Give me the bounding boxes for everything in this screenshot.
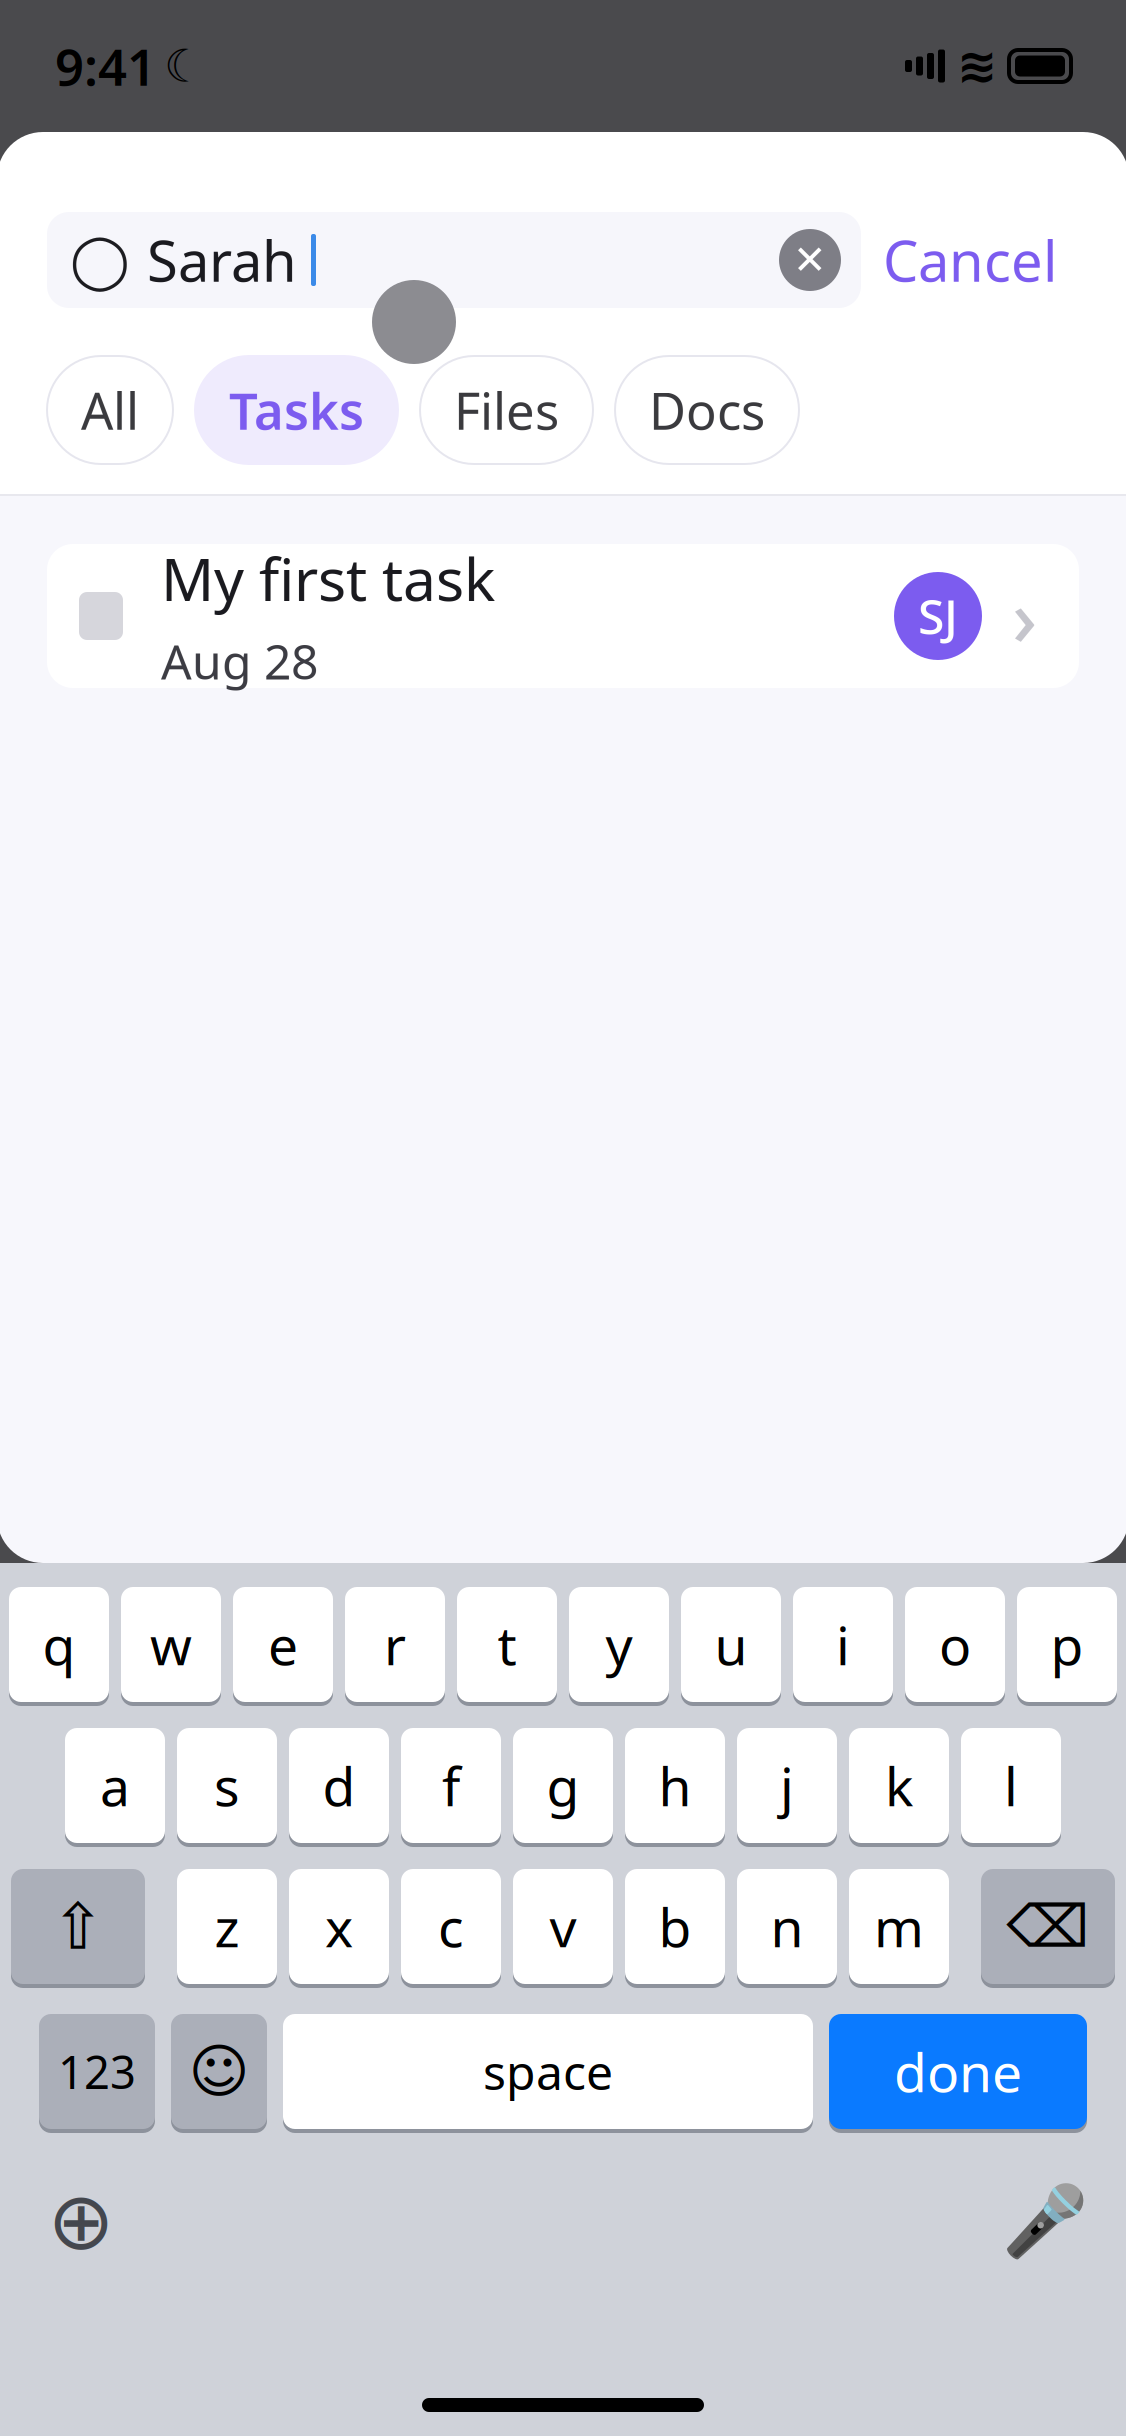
button[interactable]: x xyxy=(289,1867,389,1986)
staticText: a xyxy=(100,1750,130,1821)
staticText: u xyxy=(714,1609,747,1680)
staticText: c xyxy=(438,1891,464,1962)
staticText: n xyxy=(770,1891,803,1962)
staticText: p xyxy=(1050,1609,1083,1680)
button[interactable]: space xyxy=(283,2012,813,2131)
staticText: j xyxy=(780,1750,794,1821)
staticText: ✕ xyxy=(793,237,827,283)
staticText: f xyxy=(442,1750,460,1821)
button[interactable]: w xyxy=(121,1585,221,1704)
staticText: Docs xyxy=(649,376,765,444)
staticText: ☾ xyxy=(164,40,205,92)
staticText: Tasks xyxy=(229,376,364,444)
button[interactable]: Shift xyxy=(11,1867,145,1986)
button[interactable]: u xyxy=(681,1585,781,1704)
button[interactable]: e xyxy=(233,1585,333,1704)
staticText: ◯ xyxy=(70,230,130,290)
staticText: o xyxy=(939,1609,971,1680)
button[interactable]: Done xyxy=(829,2012,1087,2131)
button[interactable]: s xyxy=(177,1726,277,1845)
button[interactable]: l xyxy=(961,1726,1061,1845)
staticText: ☺ xyxy=(188,2038,249,2105)
button[interactable]: b xyxy=(625,1867,725,1986)
button[interactable]: v xyxy=(513,1867,613,1986)
button[interactable]: d xyxy=(289,1726,389,1845)
staticText: done xyxy=(894,2036,1022,2107)
button[interactable]: t xyxy=(457,1585,557,1704)
button[interactable]: h xyxy=(625,1726,725,1845)
staticText: q xyxy=(42,1609,75,1680)
staticText: 9:41 xyxy=(55,32,156,100)
staticText: y xyxy=(605,1609,632,1680)
staticText: › xyxy=(1012,565,1037,667)
button[interactable]: y xyxy=(569,1585,669,1704)
staticText: Sarah xyxy=(147,223,297,297)
staticText: ⌫ xyxy=(1006,1893,1089,1960)
staticText: Files xyxy=(454,376,559,444)
button[interactable]: Files xyxy=(420,356,593,464)
button[interactable]: Cancel xyxy=(861,212,1079,308)
staticText: SJ xyxy=(918,584,958,648)
staticText: ⇧ xyxy=(51,1890,105,1963)
staticText: h xyxy=(658,1750,691,1821)
staticText: t xyxy=(497,1609,516,1680)
staticText: s xyxy=(214,1750,240,1821)
staticText: d xyxy=(322,1750,355,1821)
staticText: i xyxy=(836,1609,850,1680)
button[interactable]: My first task xyxy=(47,544,1079,688)
staticText: My first task xyxy=(161,539,495,617)
button[interactable]: i xyxy=(793,1585,893,1704)
button[interactable]: Clear search text xyxy=(771,221,849,299)
button[interactable]: Docs xyxy=(615,356,799,464)
staticText: v xyxy=(549,1891,576,1962)
staticText: b xyxy=(658,1891,691,1962)
staticText: z xyxy=(214,1891,239,1962)
staticText: e xyxy=(268,1609,298,1680)
button[interactable]: Tasks xyxy=(195,356,398,464)
button[interactable]: Switch keyboard language xyxy=(33,2173,129,2269)
staticText: ⊕ xyxy=(47,2176,114,2266)
staticText: 🎤 xyxy=(1002,2181,1088,2261)
button[interactable]: n xyxy=(737,1867,837,1986)
button[interactable]: Emoji xyxy=(171,2012,267,2131)
button[interactable]: Numbers xyxy=(39,2012,155,2131)
staticText: Cancel xyxy=(883,223,1057,297)
button[interactable]: All xyxy=(47,356,173,464)
staticText: ≋ xyxy=(957,39,997,93)
button[interactable]: Dictation xyxy=(997,2173,1093,2269)
staticText: m xyxy=(874,1891,924,1962)
staticText: x xyxy=(325,1891,353,1962)
staticText: g xyxy=(546,1750,579,1821)
staticText: r xyxy=(384,1609,406,1680)
staticText: k xyxy=(885,1750,913,1821)
staticText: space xyxy=(483,2040,613,2103)
button[interactable]: k xyxy=(849,1726,949,1845)
staticText: Aug 28 xyxy=(161,629,318,693)
button[interactable]: p xyxy=(1017,1585,1117,1704)
button[interactable]: f xyxy=(401,1726,501,1845)
button[interactable]: Delete xyxy=(981,1867,1115,1986)
button[interactable]: o xyxy=(905,1585,1005,1704)
button[interactable]: j xyxy=(737,1726,837,1845)
staticText: l xyxy=(1004,1750,1018,1821)
staticText: w xyxy=(150,1609,192,1680)
button[interactable]: g xyxy=(513,1726,613,1845)
button[interactable]: z xyxy=(177,1867,277,1986)
staticText: 123 xyxy=(58,2041,136,2102)
button[interactable]: r xyxy=(345,1585,445,1704)
button[interactable]: c xyxy=(401,1867,501,1986)
button[interactable]: a xyxy=(65,1726,165,1845)
button[interactable]: m xyxy=(849,1867,949,1986)
staticText: All xyxy=(81,376,139,444)
button[interactable]: q xyxy=(9,1585,109,1704)
